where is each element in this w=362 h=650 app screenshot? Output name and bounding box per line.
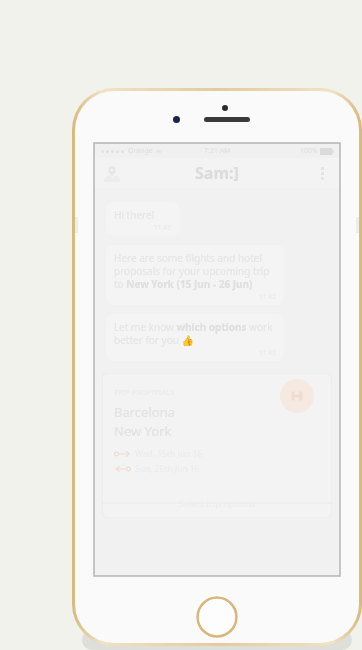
button[interactable]: Here are some flights and hotel proposal…: [106, 245, 284, 305]
staticText: New York: [114, 422, 172, 440]
button[interactable]: TRIP PROPOSALS: [102, 373, 332, 518]
staticText: Here are some flights and hotel proposal…: [114, 251, 276, 291]
staticText: 100%: [300, 146, 318, 156]
button[interactable]: Map: [98, 159, 126, 187]
button[interactable]: Let me know which options work better fo…: [106, 314, 284, 361]
staticText: Hi there!: [114, 208, 155, 222]
staticText: Let me know which options work better fo…: [114, 320, 276, 347]
button[interactable]: Sam:]: [195, 162, 239, 184]
staticText: Sam:]: [195, 162, 239, 184]
staticText: Orange: [128, 146, 153, 156]
staticText: 7:21 AM: [204, 146, 231, 156]
staticText: Barcelona: [114, 403, 175, 421]
button[interactable]: Home: [196, 596, 238, 638]
